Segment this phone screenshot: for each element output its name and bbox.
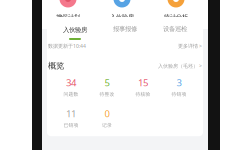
staticText: 更多详情 > (178, 42, 202, 49)
staticText: 5 (104, 76, 109, 89)
button[interactable]: 入伙验房（毛坯） > (158, 62, 202, 69)
button[interactable]: 增保计划 (41, 0, 95, 29)
button[interactable]: 报事报修 (100, 17, 150, 40)
staticText: 待整改 (99, 91, 114, 97)
staticText: 增保计划 (56, 13, 80, 21)
staticText: 34 (66, 76, 76, 89)
staticText: 待核验 (135, 91, 150, 97)
staticText: 记录 (102, 122, 112, 128)
staticText: 已销项 (63, 122, 78, 128)
staticText: 0 (104, 107, 109, 120)
staticText: 3 (176, 76, 181, 89)
staticText: 11 (66, 107, 76, 120)
button[interactable]: 入伙验房 (95, 0, 149, 29)
staticText: 15 (138, 76, 148, 89)
staticText: 问题数 (63, 91, 78, 97)
staticText: 入伙验房 (63, 26, 87, 34)
staticText: 待销项 (171, 91, 186, 97)
staticText: 数据更新于10:44 (48, 42, 86, 49)
staticText: 统计分析 (164, 13, 188, 21)
button[interactable]: 入伙验房 (50, 17, 100, 40)
button[interactable]: 更多详情 > (178, 42, 202, 49)
staticText: 入伙验房（毛坯） > (158, 62, 202, 69)
staticText: 入伙验房 (110, 13, 134, 21)
button[interactable]: 统计分析 (149, 0, 203, 29)
staticText: 设备巡检 (163, 25, 187, 33)
button[interactable]: 设备巡检 (150, 17, 200, 40)
staticText: 概览 (48, 60, 64, 71)
staticText: 报事报修 (113, 25, 137, 33)
